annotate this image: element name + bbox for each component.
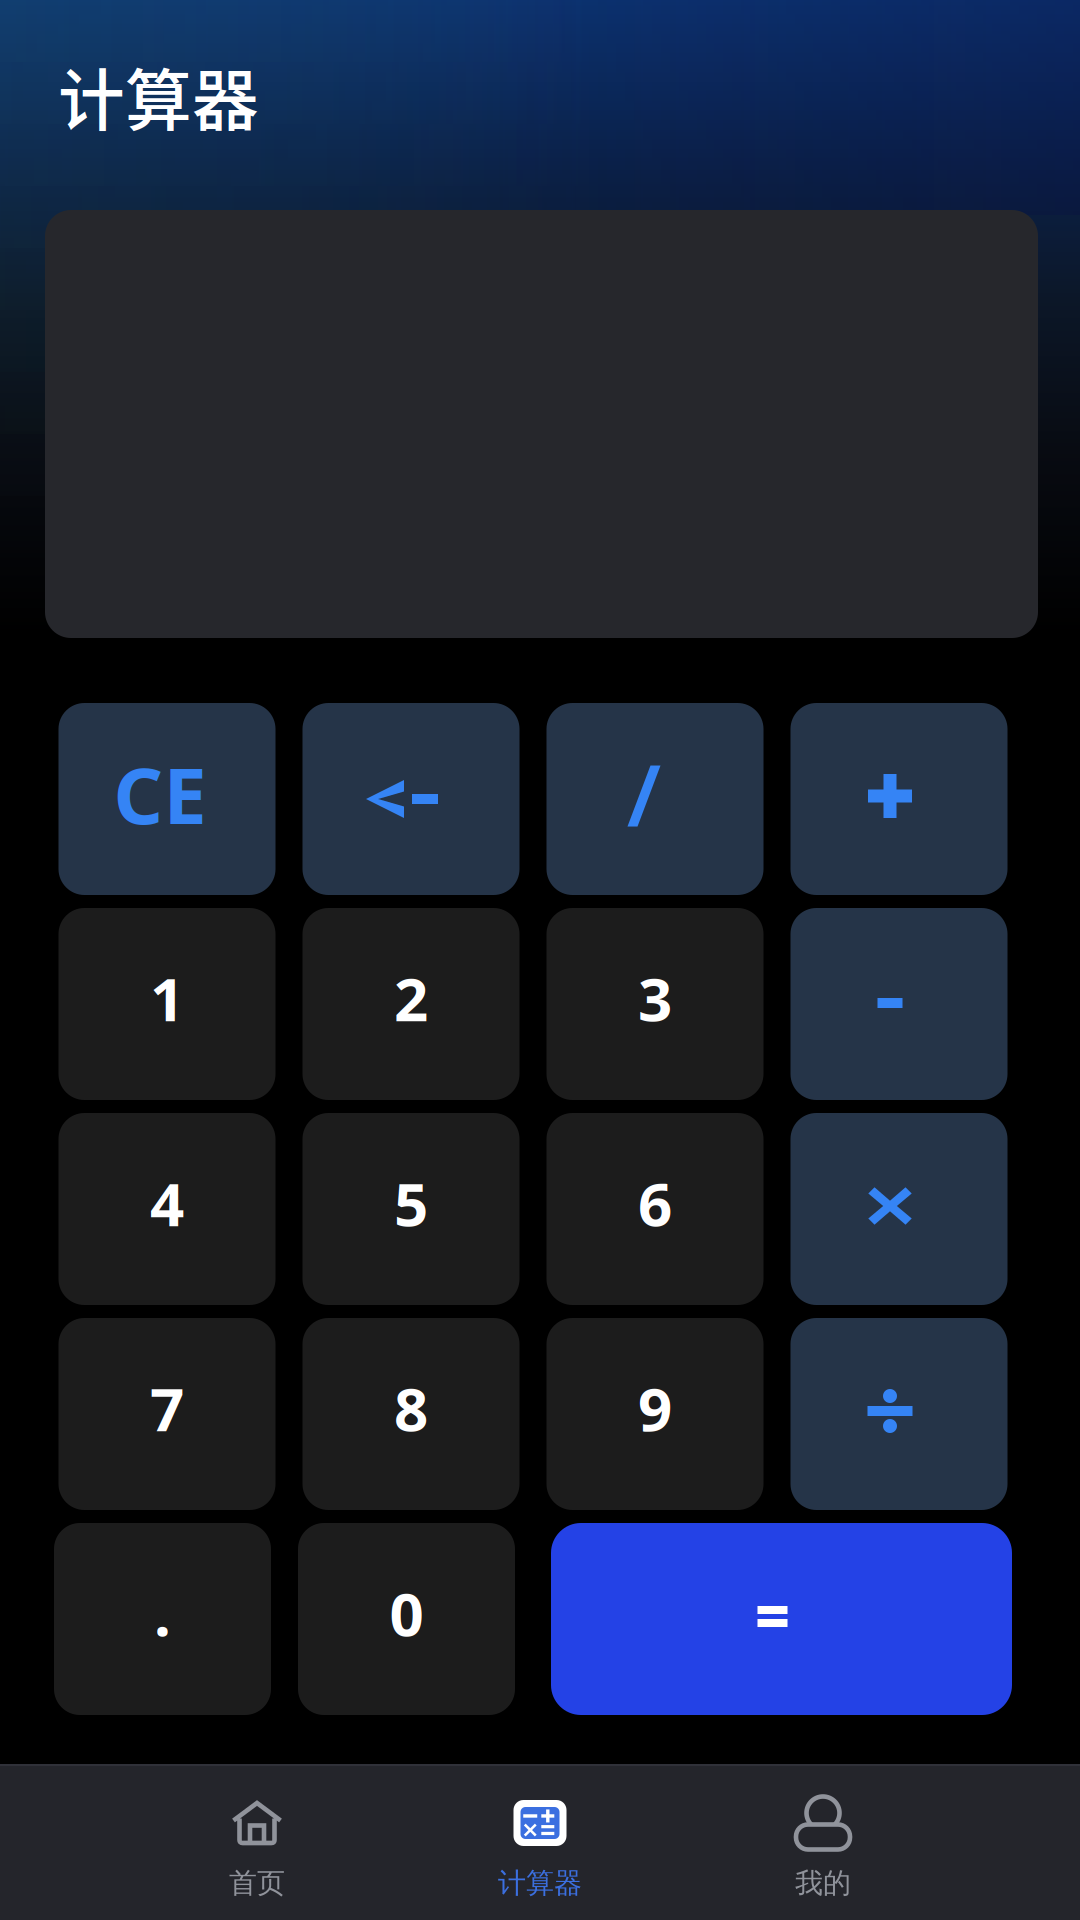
button[interactable]: 6	[546, 1113, 763, 1305]
button[interactable]: 计算器	[398, 1764, 681, 1920]
staticText: 2	[394, 958, 428, 1038]
staticText: 计算器	[58, 48, 259, 144]
staticText: .	[154, 1573, 171, 1653]
staticText: 9	[638, 1368, 672, 1448]
button[interactable]: Divide	[546, 703, 763, 895]
button[interactable]: .	[54, 1523, 271, 1715]
button[interactable]: Backspace	[302, 703, 519, 895]
staticText: 计算器	[498, 1866, 582, 1900]
button[interactable]: 首页	[115, 1764, 398, 1920]
button[interactable]: 0	[298, 1523, 515, 1715]
button[interactable]: Plus	[790, 703, 1007, 895]
staticText: 5	[394, 1163, 428, 1243]
staticText: 8	[394, 1368, 428, 1448]
button[interactable]: 8	[302, 1318, 519, 1510]
staticText: 3	[638, 958, 672, 1038]
staticText: CE	[113, 743, 206, 845]
staticText: 我的	[795, 1866, 851, 1900]
button[interactable]: Divide	[790, 1318, 1007, 1510]
button[interactable]: Multiply	[790, 1113, 1007, 1305]
button[interactable]: 2	[302, 908, 519, 1100]
button[interactable]: 1	[58, 908, 275, 1100]
button[interactable]: 9	[546, 1318, 763, 1510]
button[interactable]: 7	[58, 1318, 275, 1510]
button[interactable]: CE	[58, 703, 275, 895]
button[interactable]: 3	[546, 908, 763, 1100]
button[interactable]: Equals	[551, 1523, 1012, 1715]
staticText: 6	[638, 1163, 672, 1243]
staticText: 4	[150, 1163, 184, 1243]
staticText: 7	[150, 1368, 184, 1448]
staticText: 1	[150, 958, 184, 1038]
button[interactable]: 我的	[681, 1764, 964, 1920]
staticText: 0	[389, 1573, 423, 1653]
button[interactable]: 5	[302, 1113, 519, 1305]
staticText: 首页	[229, 1866, 285, 1900]
button[interactable]: 4	[58, 1113, 275, 1305]
button[interactable]: Minus	[790, 908, 1007, 1100]
